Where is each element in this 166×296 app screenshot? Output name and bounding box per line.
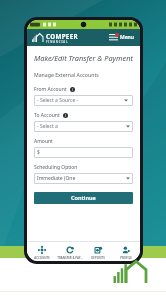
staticText: From Account bbox=[34, 86, 67, 93]
staticText: ACCOUNTS bbox=[34, 256, 50, 260]
staticText: Scheduling Option bbox=[34, 164, 78, 171]
button[interactable]: Info about From Account bbox=[70, 87, 75, 92]
staticText: Menu bbox=[120, 34, 134, 41]
staticText: - Select a Source - bbox=[37, 97, 79, 104]
button[interactable]: ACCOUNTS bbox=[27, 242, 56, 261]
staticText: FINANCIAL bbox=[46, 40, 69, 44]
button[interactable]: DEPOSITS bbox=[84, 242, 112, 261]
button[interactable]: Manage External Accounts bbox=[34, 71, 99, 78]
staticText: $ bbox=[37, 149, 40, 156]
staticText: Make/Edit Transfer & Payment bbox=[34, 53, 133, 63]
staticText: TRANSFER & PAY... bbox=[57, 256, 83, 260]
button[interactable]: Immediate (One Time) bbox=[34, 173, 133, 184]
button[interactable]: $ bbox=[34, 147, 133, 158]
button[interactable]: Menu bbox=[108, 32, 135, 43]
button[interactable]: Info about To Account bbox=[63, 113, 68, 118]
button[interactable]: PROFILE bbox=[112, 242, 140, 261]
staticText: Continue bbox=[71, 194, 96, 202]
staticText: DEPOSITS bbox=[91, 256, 105, 260]
button[interactable]: TRANSFER & PAY... bbox=[56, 242, 84, 261]
staticText: COMPEER bbox=[46, 32, 78, 40]
staticText: To Account bbox=[34, 112, 60, 119]
staticText: Immediate (One Time) bbox=[37, 175, 81, 182]
staticText: Amount bbox=[34, 138, 53, 145]
staticText: - Select a Destination - bbox=[37, 123, 81, 130]
button[interactable]: Continue bbox=[34, 192, 133, 204]
button[interactable]: - Select a Source - bbox=[34, 95, 133, 106]
button[interactable]: - Select a Destination - bbox=[34, 121, 133, 132]
staticText: PROFILE bbox=[120, 256, 132, 260]
